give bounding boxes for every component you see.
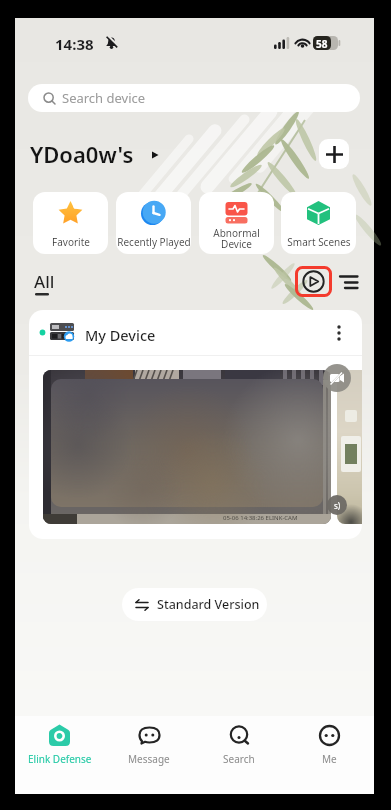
button[interactable]: 05-06 14:38:26 ELINK-CAM — [43, 370, 331, 524]
button[interactable]: Message — [104, 716, 194, 794]
staticText: 58 — [316, 37, 328, 51]
staticText: YDoa0w's — [30, 139, 134, 169]
staticText: All — [34, 270, 55, 293]
button[interactable]: Recently Played — [116, 192, 191, 254]
button[interactable]: Search device — [28, 84, 360, 112]
staticText: 05-06 14:38:26 ELINK-CAM — [223, 514, 298, 522]
button[interactable] — [319, 139, 349, 169]
button[interactable]: Favorite — [33, 192, 108, 254]
button[interactable]: Search — [194, 716, 284, 794]
button[interactable]: Me — [284, 716, 374, 794]
staticText: Recently Played — [117, 235, 191, 249]
button[interactable]: Elink Defense — [15, 716, 104, 794]
button[interactable]: Abnormal Device — [199, 192, 274, 254]
staticText: Me — [322, 752, 337, 766]
staticText: 14:38 — [55, 34, 94, 54]
button[interactable] — [337, 272, 361, 292]
staticText: Search — [223, 752, 255, 766]
staticText: Standard Version — [157, 596, 260, 613]
staticText: Abnormal Device — [213, 226, 260, 249]
staticText: s) — [334, 500, 341, 511]
staticText: Search device — [62, 89, 146, 107]
button[interactable] — [295, 266, 332, 297]
staticText: Message — [128, 752, 170, 766]
staticText: My Device — [85, 325, 156, 345]
staticText: Favorite — [52, 235, 90, 249]
button[interactable]: My Device — [29, 310, 362, 355]
button[interactable]: Smart Scenes — [281, 192, 356, 254]
staticText: Elink Defense — [28, 752, 92, 766]
button[interactable]: Standard Version — [122, 588, 267, 621]
staticText: Smart Scenes — [287, 235, 351, 249]
